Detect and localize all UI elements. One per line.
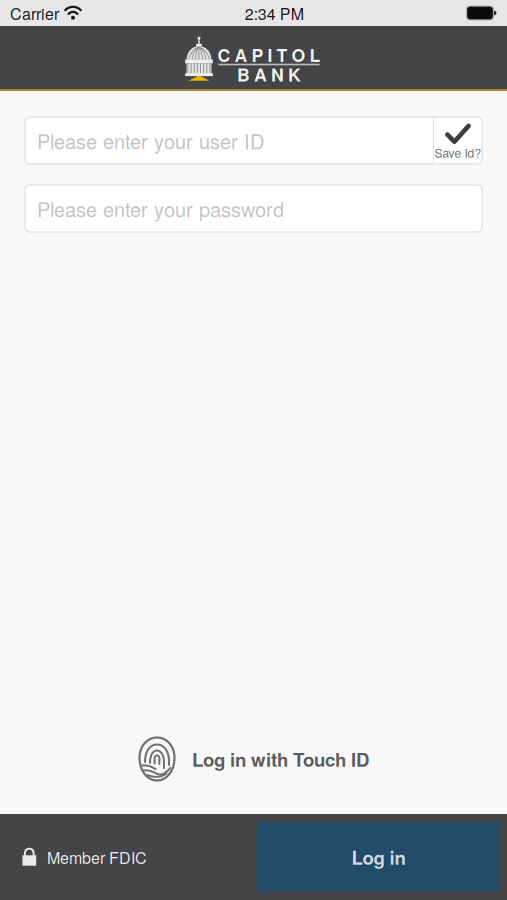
staticText: Member FDIC <box>47 845 147 868</box>
staticText: C A P I T O L <box>217 42 320 67</box>
staticText: Please enter your user ID <box>37 126 264 155</box>
button[interactable]: Log in <box>257 822 500 892</box>
staticText: Save Id? <box>434 144 481 161</box>
staticText: 2:34 PM <box>245 1 304 24</box>
staticText: Please enter your password <box>37 194 284 223</box>
button[interactable]: Save Id? <box>434 117 482 164</box>
staticText: Carrier <box>10 1 59 24</box>
staticText: Log in with Touch ID <box>192 746 369 772</box>
staticText: Log in <box>351 844 405 870</box>
button[interactable]: Log in with Touch ID <box>128 732 379 786</box>
staticText: B A N K <box>237 62 301 87</box>
